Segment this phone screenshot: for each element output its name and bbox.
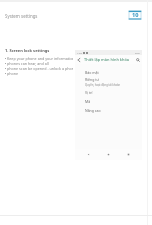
staticText: Thiết lập màn hình khóa (84, 57, 130, 62)
staticText: Bảo mật (85, 70, 99, 75)
button[interactable]: Recents (126, 152, 131, 157)
staticText: phone (7, 71, 19, 76)
button[interactable]: Riêng tư (75, 77, 142, 87)
button[interactable]: Back (77, 58, 81, 62)
button[interactable]: Logo (128, 9, 142, 21)
staticText: 1. Screen lock settings (5, 48, 50, 53)
staticText: System settings (5, 13, 38, 19)
staticText: 1:09 (77, 51, 82, 54)
button[interactable]: Vị trí (75, 88, 142, 96)
staticText: Keep your phone and your information sec… (7, 56, 73, 61)
button[interactable]: Mã (75, 97, 142, 105)
button[interactable]: Back (86, 152, 91, 157)
staticText: 10 (132, 11, 139, 19)
button[interactable]: Home (106, 152, 111, 157)
staticText: Riêng tư (85, 77, 99, 82)
staticText: Nâng cao (85, 108, 101, 113)
staticText: phone scan be opened - unlock a phon (7, 66, 73, 71)
staticText: phones can hear, and all (7, 61, 49, 66)
button[interactable]: Bảo mật (75, 68, 142, 76)
staticText: Mã (85, 99, 91, 104)
staticText: 94% (135, 51, 140, 54)
staticText: Quyền, hoạt động tài khoản (85, 83, 121, 87)
staticText: Vị trí (85, 90, 93, 95)
button[interactable]: Search (136, 58, 140, 62)
button[interactable]: Nâng cao (75, 106, 142, 114)
